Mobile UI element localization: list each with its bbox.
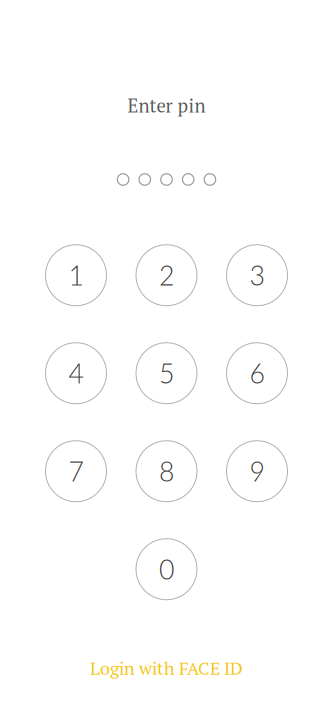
staticText: 0 — [159, 553, 174, 585]
button[interactable]: 4 — [45, 343, 106, 404]
staticText: Login with FACE ID — [90, 656, 243, 680]
staticText: 5 — [159, 357, 174, 389]
button[interactable]: 9 — [226, 441, 287, 502]
button[interactable]: Login with FACE ID — [90, 656, 243, 680]
button[interactable]: 5 — [136, 343, 197, 404]
staticText: 9 — [249, 455, 264, 487]
staticText: Enter pin — [127, 93, 205, 118]
staticText: 7 — [68, 455, 83, 487]
button[interactable]: 8 — [136, 441, 197, 502]
staticText: 2 — [159, 259, 174, 291]
button[interactable]: 2 — [136, 245, 197, 306]
staticText: 6 — [249, 357, 264, 389]
button[interactable]: 1 — [45, 245, 106, 306]
button[interactable]: 7 — [45, 441, 106, 502]
button[interactable]: 0 — [136, 539, 197, 600]
staticText: 1 — [68, 259, 83, 291]
button[interactable]: 3 — [226, 245, 287, 306]
staticText: 8 — [159, 455, 174, 487]
button[interactable]: 6 — [226, 343, 287, 404]
staticText: 4 — [68, 357, 83, 389]
staticText: 3 — [249, 259, 264, 291]
